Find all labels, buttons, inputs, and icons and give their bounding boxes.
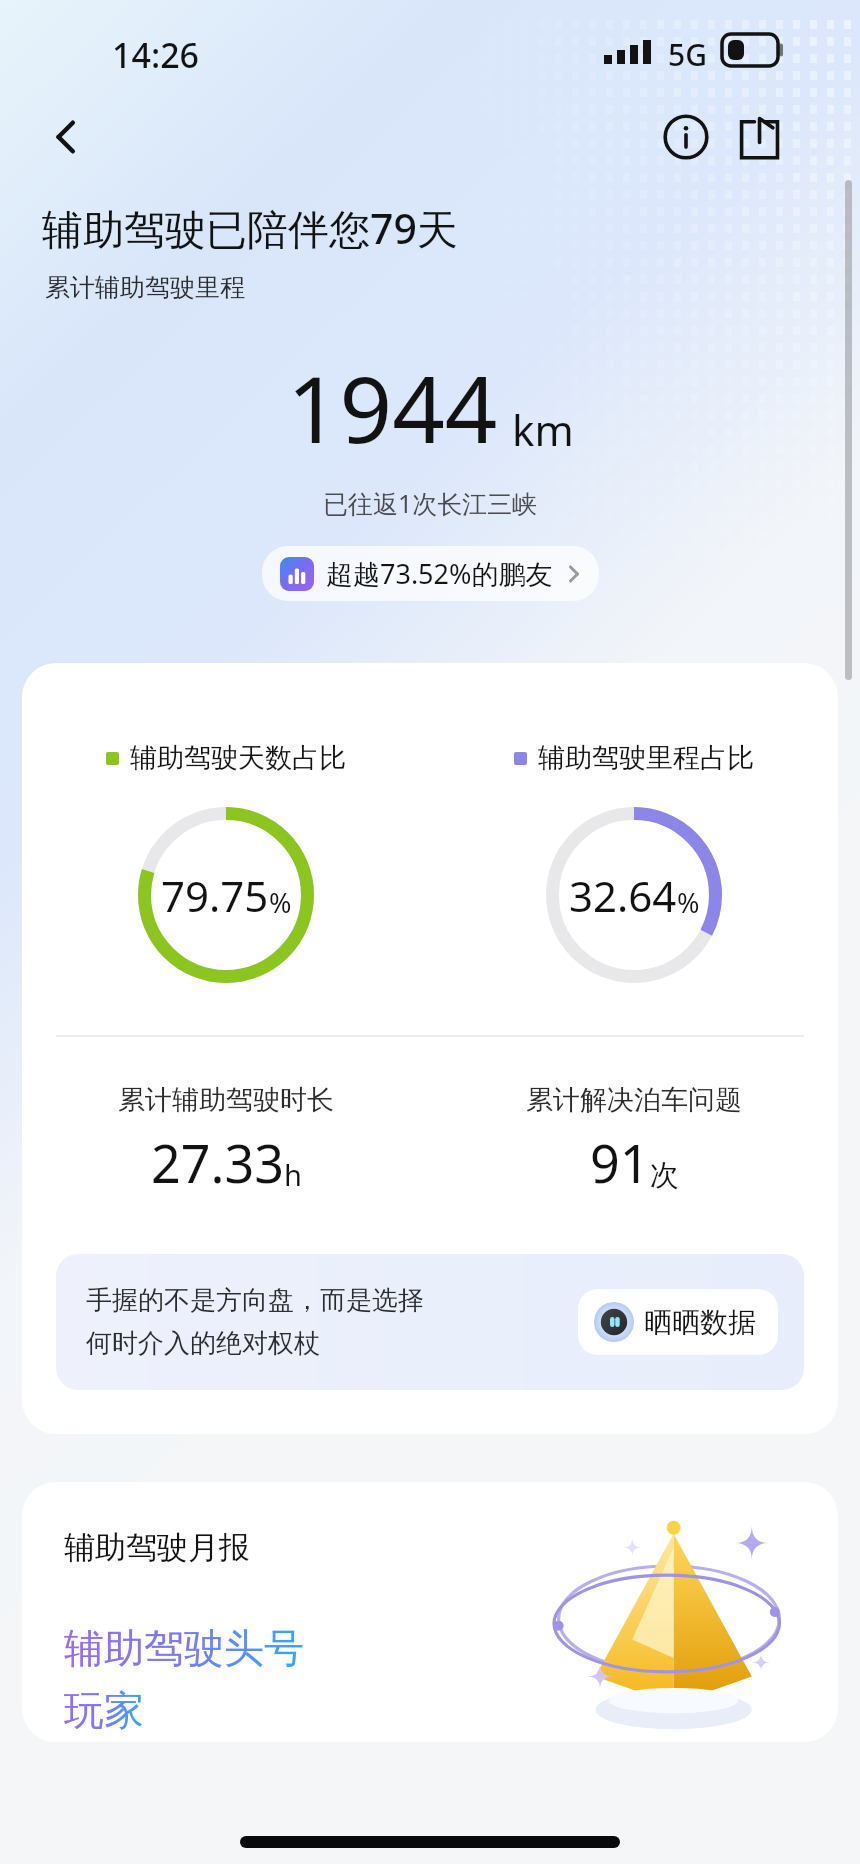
staticText: 手握的不是方向盘，而是选择 xyxy=(86,1284,424,1317)
staticText: 何时介入的绝对权杖 xyxy=(86,1327,320,1360)
button[interactable]: Share xyxy=(728,105,792,169)
staticText: 已往返1次长江三峡 xyxy=(323,486,538,520)
staticText: 32.64 xyxy=(569,867,677,924)
button[interactable]: Back xyxy=(34,105,98,169)
button[interactable]: 辅助驾驶月报 xyxy=(22,1482,838,1742)
staticText: km xyxy=(512,401,574,458)
staticText: 次 xyxy=(650,1157,679,1194)
staticText: 27.33 xyxy=(151,1127,284,1198)
staticText: h xyxy=(284,1155,302,1194)
button[interactable]: 晒晒数据 xyxy=(578,1289,778,1355)
staticText: 辅助驾驶里程占比 xyxy=(538,741,754,775)
staticText: 1944 xyxy=(287,345,498,470)
staticText: 79.75 xyxy=(161,867,269,924)
staticText: 辅助驾驶天数占比 xyxy=(130,741,346,775)
staticText: % xyxy=(269,884,292,921)
staticText: 辅助驾驶头号 xyxy=(64,1623,304,1673)
staticText: 超越73.52%的鹏友 xyxy=(326,555,553,592)
staticText: 14:26 xyxy=(112,32,200,78)
staticText: 累计解决泊车问题 xyxy=(526,1083,742,1117)
staticText: % xyxy=(677,884,700,921)
staticText: 辅助驾驶已陪伴您79天 xyxy=(42,200,458,256)
staticText: 累计辅助驾驶里程 xyxy=(45,272,245,303)
button[interactable]: Info xyxy=(654,105,718,169)
staticText: 91 xyxy=(590,1127,650,1198)
staticText: 5G xyxy=(668,34,707,75)
staticText: 辅助驾驶月报 xyxy=(64,1528,250,1567)
button[interactable]: 超越73.52%的鹏友 xyxy=(262,546,599,601)
staticText: 累计辅助驾驶时长 xyxy=(118,1083,334,1117)
staticText: 晒晒数据 xyxy=(644,1305,756,1340)
staticText: 玩家 xyxy=(64,1685,144,1735)
